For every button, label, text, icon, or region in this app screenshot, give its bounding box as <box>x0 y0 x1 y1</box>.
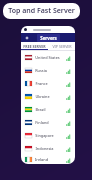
button[interactable]: Ukraine <box>21 90 75 103</box>
staticText: Top and Fast Server <box>8 6 75 16</box>
button[interactable]: FREE SERVER <box>21 42 48 50</box>
button[interactable]: Signal strength <box>65 94 71 100</box>
button[interactable]: Top and Fast Server <box>3 3 80 19</box>
button[interactable]: United States <box>21 51 75 64</box>
staticText: Finland <box>35 120 49 125</box>
button[interactable]: Signal strength <box>65 107 71 113</box>
button[interactable]: Signal strength <box>65 146 71 152</box>
button[interactable]: Russia <box>21 64 75 77</box>
staticText: Servers <box>40 35 57 41</box>
button[interactable]: France <box>21 77 75 90</box>
staticText: France <box>35 81 48 86</box>
button[interactable]: Ireland <box>21 155 75 164</box>
button[interactable]: Signal strength <box>65 68 71 74</box>
staticText: United States <box>35 55 60 60</box>
button[interactable]: Signal strength <box>65 133 71 139</box>
staticText: VIP SERVER <box>52 44 72 49</box>
button[interactable]: Indonesia <box>21 142 75 155</box>
staticText: Brazil <box>35 107 46 112</box>
button[interactable]: Signal strength <box>65 81 71 87</box>
staticText: Ireland <box>35 157 48 162</box>
button[interactable]: Signal strength <box>65 120 71 126</box>
staticText: Indonesia <box>35 146 54 151</box>
staticText: Singapore <box>35 133 54 138</box>
button[interactable]: VIP SERVER <box>48 42 75 50</box>
button[interactable]: Finland <box>21 116 75 129</box>
staticText: Russia <box>35 68 47 73</box>
staticText: Ukraine <box>35 94 50 99</box>
button[interactable]: Brazil <box>21 103 75 116</box>
staticText: FREE SERVER <box>23 44 46 49</box>
button[interactable]: Signal strength <box>65 55 71 61</box>
button[interactable]: Singapore <box>21 129 75 142</box>
button[interactable]: Add server <box>23 34 30 41</box>
button[interactable]: Signal strength <box>65 157 71 163</box>
